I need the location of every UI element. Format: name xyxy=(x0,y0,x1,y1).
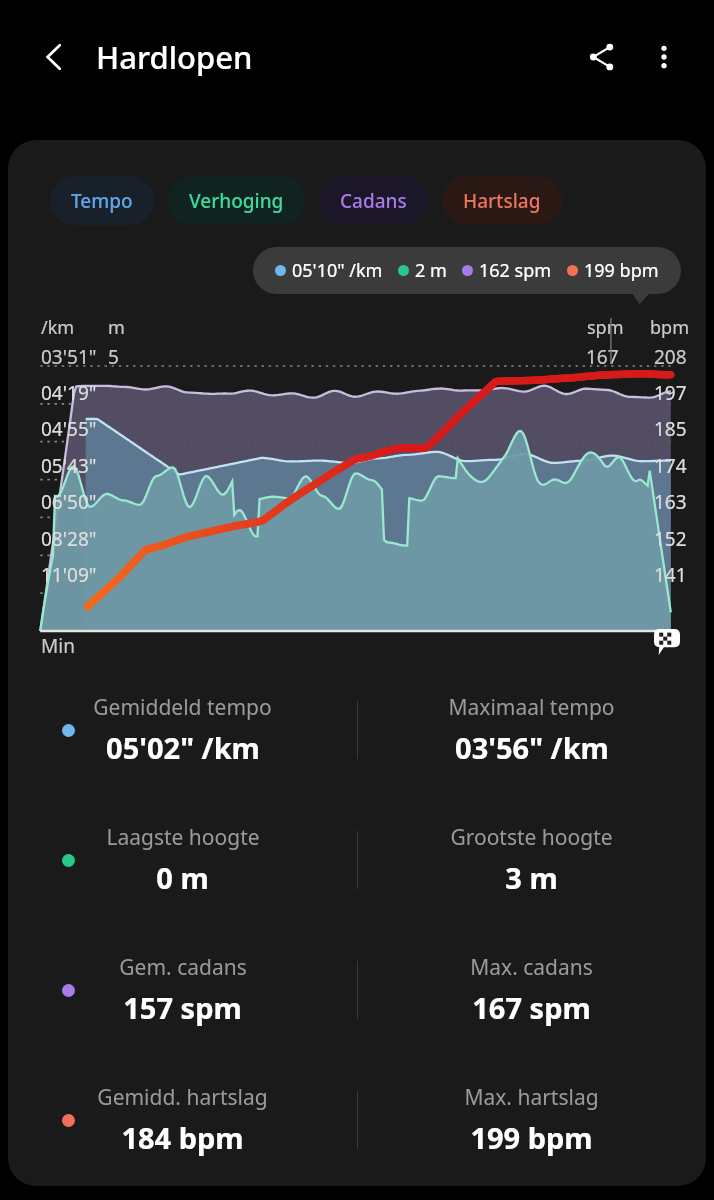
button[interactable]: Max. cadans xyxy=(357,945,706,1035)
staticText: Hartslag xyxy=(463,188,541,214)
staticText: 162 spm xyxy=(479,258,552,283)
button[interactable]: Gemiddeld tempo xyxy=(8,685,357,775)
staticText: Laagste hoogte xyxy=(106,823,260,852)
staticText: bpm xyxy=(650,315,689,340)
staticText: 199 bpm xyxy=(584,258,659,283)
staticText: 208 xyxy=(654,344,687,370)
button[interactable]: Laagste hoogte xyxy=(8,815,357,905)
staticText: /km xyxy=(41,315,75,340)
button[interactable]: Tempo xyxy=(50,176,154,225)
staticText: Verhoging xyxy=(189,188,284,214)
staticText: 163 xyxy=(654,489,687,515)
staticText: Gemiddeld tempo xyxy=(93,693,272,722)
staticText: 04'19" xyxy=(41,380,97,406)
staticText: spm xyxy=(587,315,624,340)
button[interactable]: Max. hartslag xyxy=(357,1075,706,1165)
staticText: 3 m xyxy=(505,858,558,897)
staticText: 05'43" xyxy=(41,453,97,479)
button[interactable]: Back xyxy=(26,29,82,85)
staticText: Min xyxy=(41,633,75,659)
staticText: 174 xyxy=(654,453,687,479)
button[interactable]: 05'10" /km xyxy=(253,247,681,294)
staticText: 06'50" xyxy=(41,489,97,515)
staticText: 5 xyxy=(108,344,119,370)
button[interactable]: Maximaal tempo xyxy=(357,685,706,775)
staticText: 184 bpm xyxy=(121,1118,244,1157)
staticText: 0 m xyxy=(156,858,209,897)
staticText: 185 xyxy=(654,416,687,442)
staticText: Cadans xyxy=(340,188,407,214)
staticText: 03'51" xyxy=(41,344,97,370)
staticText: Tempo xyxy=(71,188,133,214)
button[interactable]: More options xyxy=(636,29,692,85)
staticText: 05'10" /km xyxy=(292,258,383,283)
staticText: 197 xyxy=(654,380,687,406)
staticText: Grootste hoogte xyxy=(450,823,613,852)
staticText: 03'56" /km xyxy=(455,728,609,767)
staticText: m xyxy=(108,315,125,340)
button[interactable]: Share xyxy=(574,29,630,85)
button[interactable]: Cadans xyxy=(319,176,428,225)
staticText: Gem. cadans xyxy=(119,953,247,982)
button[interactable]: Gem. cadans xyxy=(8,945,357,1035)
staticText: 199 bpm xyxy=(470,1118,593,1157)
button[interactable]: Hartslag xyxy=(442,176,562,225)
staticText: 11'09" xyxy=(41,562,97,588)
staticText: 157 spm xyxy=(123,988,242,1027)
staticText: 04'55" xyxy=(41,416,97,442)
staticText: 05'02" /km xyxy=(106,728,260,767)
staticText: 152 xyxy=(654,526,687,552)
staticText: 2 m xyxy=(415,258,447,283)
button[interactable]: Verhoging xyxy=(168,176,305,225)
staticText: Hardlopen xyxy=(96,36,253,78)
staticText: Max. hartslag xyxy=(464,1083,599,1112)
staticText: 08'28" xyxy=(41,526,97,552)
staticText: 167 xyxy=(586,344,619,370)
staticText: 167 spm xyxy=(472,988,591,1027)
staticText: Maximaal tempo xyxy=(448,693,615,722)
staticText: 141 xyxy=(654,562,687,588)
button[interactable]: Gemidd. hartslag xyxy=(8,1075,357,1165)
button[interactable]: Grootste hoogte xyxy=(357,815,706,905)
staticText: Max. cadans xyxy=(470,953,593,982)
staticText: Gemidd. hartslag xyxy=(97,1083,268,1112)
